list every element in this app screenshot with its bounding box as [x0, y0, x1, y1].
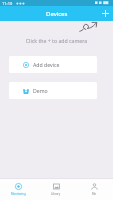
button[interactable]: Add device [9, 56, 97, 73]
staticText: Click the + to add camera [0, 37, 113, 44]
button[interactable]: Library [37, 178, 75, 200]
staticText: Library [51, 192, 61, 196]
button[interactable]: Add device [97, 6, 113, 21]
button[interactable]: Monitoring [0, 178, 37, 200]
button[interactable]: Me [75, 178, 113, 200]
staticText: Devices [46, 10, 68, 18]
button[interactable]: Demo [9, 82, 97, 99]
staticText: 11:10 [2, 1, 13, 6]
staticText: Demo [33, 87, 48, 94]
staticText: Add device [33, 61, 60, 68]
staticText: Me [92, 192, 97, 196]
staticText: Monitoring [11, 192, 26, 196]
